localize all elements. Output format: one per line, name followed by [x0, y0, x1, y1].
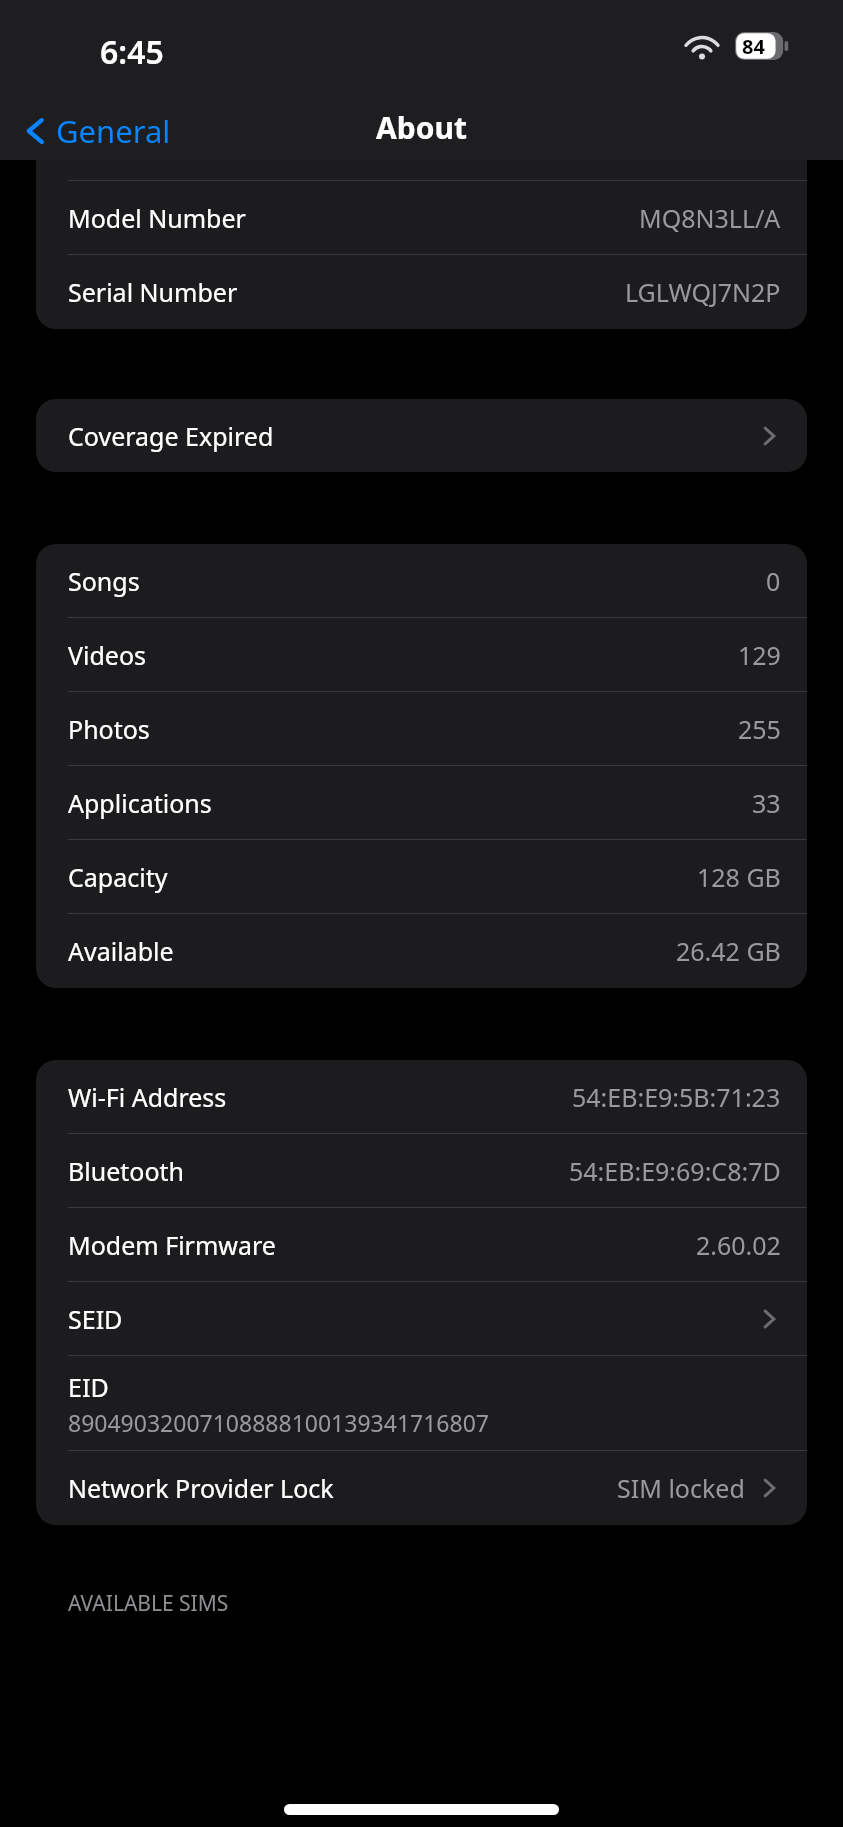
staticText: 6:45 [100, 30, 164, 74]
button[interactable]: Bluetooth [36, 1134, 807, 1208]
staticText: 2.60.02 [696, 1228, 781, 1262]
staticText: 33 [752, 786, 781, 820]
button[interactable]: Photos [36, 692, 807, 766]
staticText: 89049032007108888100139341716807 [68, 1407, 489, 1438]
staticText: EID [68, 1370, 109, 1404]
staticText: Bluetooth [68, 1154, 185, 1188]
button[interactable]: Available [36, 914, 807, 988]
staticText: Applications [68, 786, 212, 820]
staticText: 54:EB:E9:69:C8:7D [569, 1154, 781, 1188]
staticText: 54:EB:E9:5B:71:23 [572, 1080, 781, 1114]
staticText: Serial Number [68, 275, 238, 309]
staticText: SEID [68, 1302, 123, 1336]
button[interactable]: Coverage Expired [36, 399, 807, 472]
button[interactable]: Serial Number [36, 255, 807, 329]
staticText: Coverage Expired [68, 419, 274, 453]
staticText: Photos [68, 712, 150, 746]
button[interactable]: Applications [36, 766, 807, 840]
button[interactable]: EID [36, 1356, 807, 1451]
staticText: About [0, 107, 843, 148]
staticText: 84 [742, 33, 765, 60]
staticText: MQ8N3LL/A [639, 201, 781, 235]
other: Battery 84 percent [735, 32, 791, 60]
staticText: LGLWQJ7N2P [625, 275, 781, 309]
button[interactable]: Model Name [36, 107, 807, 181]
button[interactable]: Modem Firmware [36, 1208, 807, 1282]
staticText: General [56, 110, 171, 152]
other: Wi-Fi [685, 34, 719, 59]
staticText: Modem Firmware [68, 1228, 276, 1262]
staticText: Model Name [68, 127, 219, 161]
button[interactable]: Songs [36, 544, 807, 618]
staticText: Capacity [68, 860, 168, 894]
button[interactable]: Videos [36, 618, 807, 692]
button[interactable]: General [18, 110, 171, 152]
button[interactable]: Capacity [36, 840, 807, 914]
staticText: Songs [68, 564, 140, 598]
staticText: 129 [738, 638, 781, 672]
staticText: Model Number [68, 201, 246, 235]
staticText: 128 GB [697, 860, 781, 894]
staticText: SIM locked [617, 1471, 745, 1505]
button[interactable]: Model Number [36, 181, 807, 255]
staticText: 26.42 GB [676, 934, 781, 968]
staticText: 255 [738, 712, 781, 746]
staticText: Videos [68, 638, 147, 672]
staticText: Available [68, 934, 174, 968]
staticText: Network Provider Lock [68, 1471, 334, 1505]
button[interactable]: Wi-Fi Address [36, 1060, 807, 1134]
button[interactable]: SEID [36, 1282, 807, 1356]
staticText: Wi-Fi Address [68, 1080, 227, 1114]
staticText: AVAILABLE SIMS [68, 1589, 229, 1618]
button[interactable]: Network Provider Lock [36, 1451, 807, 1525]
staticText: 0 [766, 564, 781, 598]
